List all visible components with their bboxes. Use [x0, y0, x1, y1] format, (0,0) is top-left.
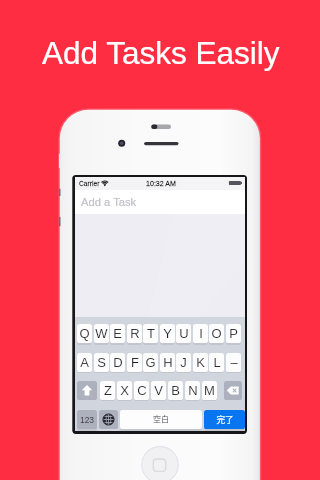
- button[interactable]: Y: [160, 324, 175, 343]
- button[interactable]: R: [127, 324, 142, 343]
- button[interactable]: V: [151, 381, 166, 400]
- staticText: Add Tasks Easily: [42, 35, 280, 70]
- button[interactable]: D: [110, 353, 125, 372]
- staticText: T: [147, 326, 155, 341]
- button[interactable]: T: [143, 324, 158, 343]
- staticText: X: [120, 383, 129, 398]
- button[interactable]: G: [143, 353, 158, 372]
- button[interactable]: Z: [100, 381, 115, 400]
- staticText: B: [171, 383, 180, 398]
- staticText: E: [113, 326, 122, 341]
- staticText: D: [113, 355, 123, 370]
- button[interactable]: –: [226, 353, 241, 372]
- staticText: L: [213, 355, 221, 370]
- staticText: Z: [104, 383, 112, 398]
- button[interactable]: Delete: [224, 381, 242, 400]
- button[interactable]: E: [110, 324, 125, 343]
- staticText: 完了: [216, 413, 234, 425]
- button[interactable]: W: [94, 324, 109, 343]
- button[interactable]: Shift: [77, 381, 97, 400]
- button[interactable]: Q: [77, 324, 92, 343]
- button[interactable]: 完了: [204, 410, 245, 429]
- button[interactable]: M: [202, 381, 217, 400]
- button[interactable]: I: [193, 324, 208, 343]
- staticText: 123: [80, 415, 94, 424]
- button[interactable]: X: [117, 381, 132, 400]
- button[interactable]: L: [209, 353, 224, 372]
- button[interactable]: B: [168, 381, 183, 400]
- staticText: Carrier: [79, 180, 100, 187]
- button[interactable]: N: [185, 381, 200, 400]
- staticText: V: [154, 383, 163, 398]
- staticText: P: [229, 326, 238, 341]
- staticText: G: [145, 355, 156, 370]
- staticText: –: [230, 355, 238, 370]
- staticText: N: [188, 383, 198, 398]
- staticText: Y: [163, 326, 172, 341]
- staticText: 10:32 AM: [146, 180, 176, 188]
- staticText: A: [80, 355, 89, 370]
- button[interactable]: 123: [77, 410, 97, 429]
- staticText: R: [130, 326, 140, 341]
- button[interactable]: F: [127, 353, 142, 372]
- button[interactable]: A: [77, 353, 92, 372]
- staticText: H: [163, 355, 173, 370]
- staticText: Add a Task: [81, 196, 137, 209]
- button[interactable]: K: [193, 353, 208, 372]
- button[interactable]: P: [226, 324, 241, 343]
- staticText: M: [204, 383, 215, 398]
- button[interactable]: Switch keyboard language: [99, 410, 118, 429]
- button[interactable]: J: [176, 353, 191, 372]
- button[interactable]: Add a Task: [75, 190, 245, 214]
- staticText: C: [137, 383, 147, 398]
- staticText: J: [180, 355, 187, 370]
- staticText: 空白: [153, 413, 169, 425]
- button[interactable]: S: [94, 353, 109, 372]
- staticText: K: [196, 355, 205, 370]
- staticText: Q: [79, 326, 90, 341]
- staticText: O: [211, 326, 222, 341]
- staticText: W: [95, 326, 108, 341]
- button[interactable]: U: [176, 324, 191, 343]
- staticText: I: [199, 326, 203, 341]
- staticText: U: [179, 326, 189, 341]
- staticText: F: [131, 355, 139, 370]
- button[interactable]: O: [209, 324, 224, 343]
- staticText: S: [97, 355, 106, 370]
- button[interactable]: 空白: [120, 410, 202, 429]
- button[interactable]: H: [160, 353, 175, 372]
- button[interactable]: C: [134, 381, 149, 400]
